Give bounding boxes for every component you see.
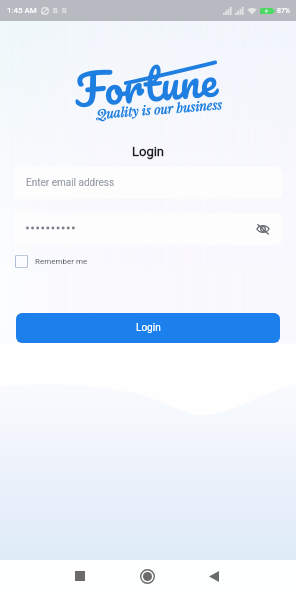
staticText: S (53, 6, 58, 15)
button[interactable]: Remember me (15, 255, 88, 268)
staticText: Login (0, 144, 296, 159)
button[interactable]: Login (16, 313, 280, 343)
staticText: Remember me (35, 257, 88, 266)
button[interactable]: Enter email address (14, 167, 282, 199)
staticText: 87% (277, 7, 290, 15)
staticText: Enter email address (26, 177, 115, 189)
staticText: 1:45 AM (7, 6, 37, 15)
staticText: Quality is our business (95, 95, 223, 122)
button[interactable]: Toggle password visibility (254, 220, 272, 238)
button[interactable]: Back (194, 560, 234, 592)
staticText: S (62, 6, 67, 15)
staticText: Fortune (71, 41, 220, 123)
button[interactable]: Home (127, 560, 167, 592)
button[interactable]: Toggle password visibility (14, 213, 282, 245)
button[interactable]: Recents (60, 560, 100, 592)
staticText: Login (136, 322, 161, 334)
